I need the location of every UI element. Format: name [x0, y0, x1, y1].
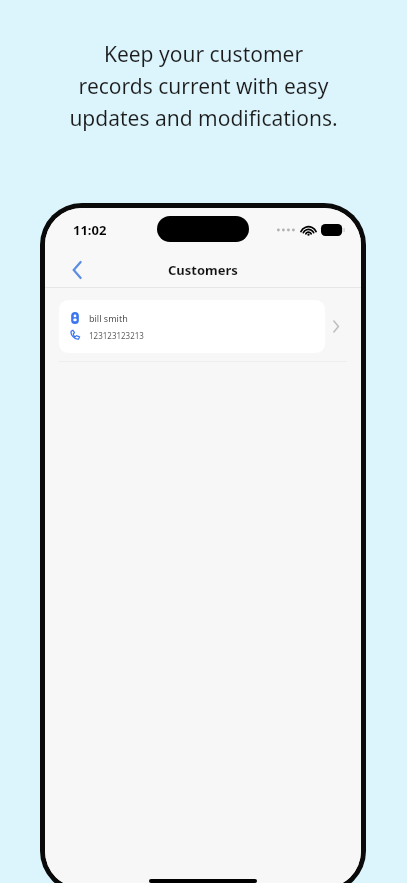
staticText: 11:02	[73, 221, 107, 239]
button[interactable]: Back	[61, 254, 93, 286]
staticText: Keep your customer records current with …	[26, 40, 381, 132]
staticText: bill smith	[89, 312, 128, 324]
staticText: Customers	[168, 261, 238, 279]
staticText: 123123123213	[89, 330, 144, 341]
button[interactable]: bill smith	[59, 300, 347, 353]
